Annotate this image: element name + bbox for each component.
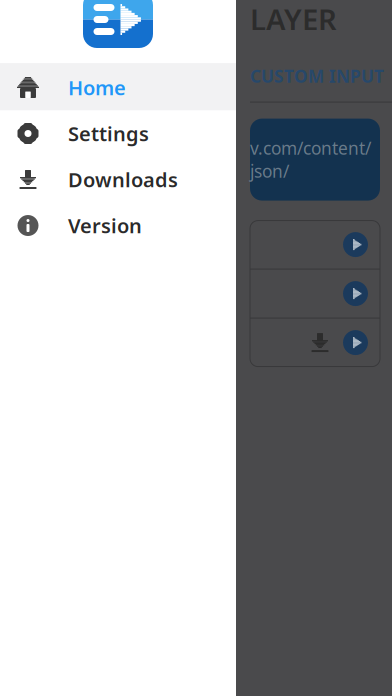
staticText: Version — [68, 212, 142, 239]
staticText: Settings — [68, 120, 149, 147]
staticText: Home — [68, 74, 126, 101]
staticText: CUSTOM INPUT — [250, 65, 384, 88]
button[interactable]: Version — [0, 202, 236, 248]
button[interactable]: Play — [343, 330, 368, 355]
button[interactable]: Play — [343, 232, 368, 257]
staticText: v.com/content/json/ — [250, 137, 371, 183]
button[interactable]: Home — [0, 64, 236, 110]
button[interactable]: Settings — [0, 110, 236, 156]
button[interactable]: Play — [343, 281, 368, 306]
button[interactable]: Download — [309, 332, 331, 353]
staticText: Downloads — [68, 166, 178, 193]
button[interactable]: Downloads — [0, 156, 236, 202]
staticText: LAYER — [250, 0, 337, 39]
